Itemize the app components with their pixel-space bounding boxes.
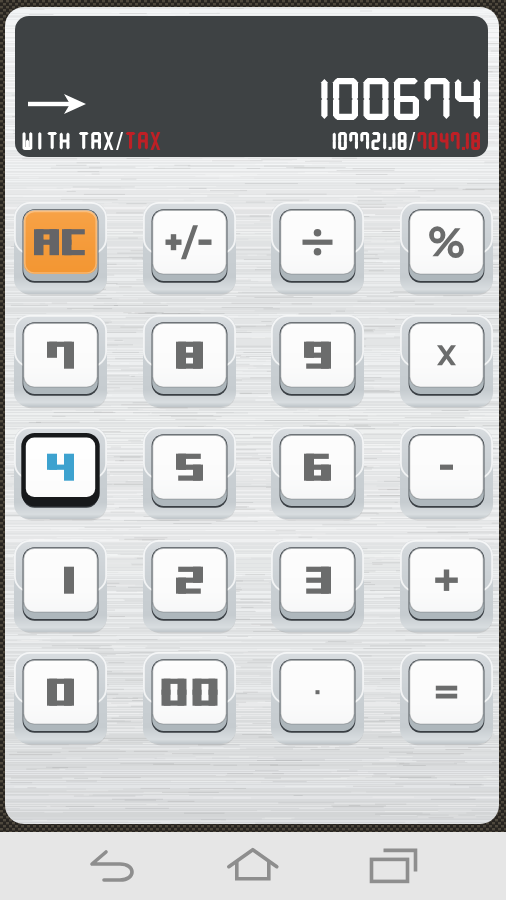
button[interactable]: multiply [400,315,493,407]
button[interactable]: decimal point [271,652,364,744]
button[interactable]: double zero [143,652,236,744]
button[interactable]: 8 [143,315,236,407]
button[interactable]: 5 [143,427,236,519]
button[interactable]: divide [271,202,364,294]
button[interactable]: 7 [14,315,107,407]
button[interactable]: 9 [271,315,364,407]
button[interactable]: Recent apps [324,832,464,900]
button[interactable]: Back [42,832,182,900]
button[interactable]: 6 [271,427,364,519]
button[interactable]: AC [14,202,107,294]
button[interactable]: 1 [14,540,107,632]
button[interactable]: 0 [14,652,107,744]
button[interactable]: percent [400,202,493,294]
button[interactable]: 2 [143,540,236,632]
button[interactable]: minus [400,427,493,519]
button[interactable]: 4 [14,427,107,519]
button[interactable]: 3 [271,540,364,632]
button[interactable]: plus [400,540,493,632]
button[interactable]: equals [400,652,493,744]
button[interactable]: Home [183,832,323,900]
button[interactable]: plus minus [143,202,236,294]
